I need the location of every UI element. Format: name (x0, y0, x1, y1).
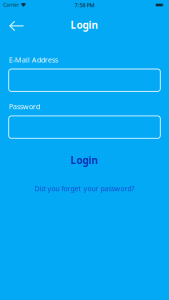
staticText: 7:58 PM (74, 1, 94, 9)
staticText: E-Mail Address (9, 55, 58, 64)
button[interactable]: Back (0, 17, 33, 35)
staticText: Password (9, 102, 40, 111)
button[interactable]: Login (9, 147, 160, 173)
staticText: Login (70, 153, 98, 167)
staticText: Carrier (3, 2, 19, 8)
staticText: Did you forget your password? (34, 184, 134, 193)
button[interactable]: Did you forget your password? (9, 179, 160, 198)
staticText: Login (70, 18, 98, 32)
